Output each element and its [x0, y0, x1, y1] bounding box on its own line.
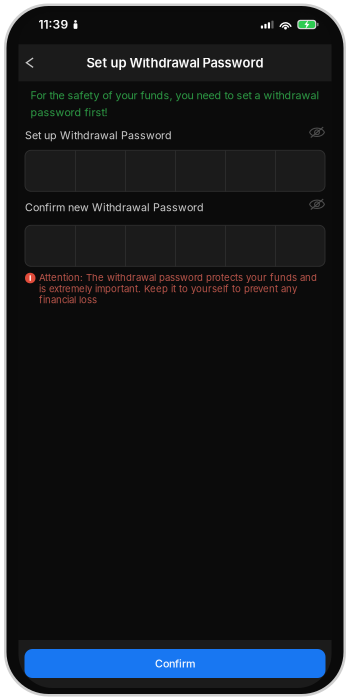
button[interactable]: Confirm — [24, 649, 325, 678]
button[interactable]: Show password — [309, 126, 325, 144]
staticText: 11:39 — [38, 17, 68, 32]
staticText: For the safety of your funds, you need t… — [30, 89, 319, 119]
staticText: Set up Withdrawal Password — [86, 55, 263, 71]
button[interactable]: Back — [19, 44, 41, 81]
staticText: Attention: The withdrawal password prote… — [39, 272, 317, 306]
button[interactable]: Show password — [309, 198, 325, 216]
staticText: Confirm new Withdrawal Password — [25, 201, 204, 214]
staticText: Confirm — [155, 657, 195, 670]
staticText: Set up Withdrawal Password — [25, 129, 172, 142]
